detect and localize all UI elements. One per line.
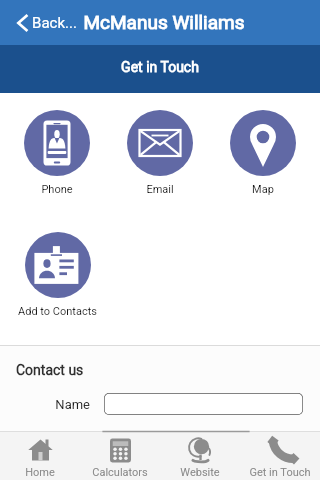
staticText: Contact us [16,362,84,378]
staticText: Add to Contacts [18,305,97,318]
button[interactable]: Add to Contacts [6,232,109,318]
button[interactable]: Email [108,110,211,196]
button[interactable]: Map [211,110,314,196]
button[interactable]: Calculators [80,431,160,480]
button[interactable]: Back [17,14,77,32]
staticText: Email [146,183,174,196]
button[interactable]: Home [0,431,80,480]
button[interactable]: Phone [6,110,108,196]
staticText: Map [252,183,274,196]
staticText: Name [0,397,90,412]
staticText: Home [25,466,55,479]
staticText: Get in Touch [249,466,311,479]
button[interactable]: Name field [104,393,303,415]
staticText: Back... [32,14,77,32]
button[interactable]: Get in Touch [240,431,320,480]
staticText: Calculators [92,466,148,479]
staticText: McManus Williams [83,11,245,33]
staticText: Website [180,466,220,479]
staticText: Get in Touch [121,59,199,75]
staticText: Phone [41,183,73,196]
button[interactable]: Website [160,431,240,480]
